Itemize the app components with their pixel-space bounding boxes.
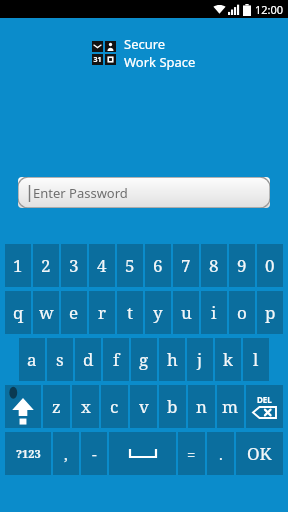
staticText: Enter Password bbox=[33, 184, 128, 202]
button[interactable]: x bbox=[72, 385, 99, 428]
staticText: k bbox=[223, 348, 233, 371]
staticText: Work Space bbox=[124, 53, 196, 71]
staticText: x bbox=[81, 395, 91, 418]
button[interactable]: = bbox=[178, 432, 205, 475]
button[interactable]: i bbox=[201, 291, 227, 334]
button[interactable]: 3 bbox=[61, 244, 87, 287]
button[interactable]: 5 bbox=[117, 244, 143, 287]
staticText: o bbox=[237, 301, 247, 324]
button[interactable]: 8 bbox=[201, 244, 227, 287]
button[interactable]: - bbox=[81, 432, 107, 475]
button[interactable]: Space bbox=[109, 432, 176, 475]
staticText: z bbox=[52, 395, 61, 418]
button[interactable]: r bbox=[89, 291, 115, 334]
button[interactable]: Shift bbox=[5, 385, 41, 428]
button[interactable]: o bbox=[229, 291, 255, 334]
staticText: f bbox=[113, 348, 120, 371]
staticText: w bbox=[39, 301, 54, 324]
staticText: t bbox=[127, 301, 133, 324]
staticText: . bbox=[219, 444, 223, 464]
staticText: d bbox=[83, 348, 94, 371]
staticText: 6 bbox=[153, 254, 163, 277]
button[interactable]: q bbox=[5, 291, 31, 334]
staticText: q bbox=[13, 301, 24, 324]
staticText: e bbox=[69, 301, 79, 324]
staticText: v bbox=[139, 395, 149, 418]
button[interactable]: . bbox=[207, 432, 234, 475]
staticText: DEL bbox=[257, 394, 272, 405]
button[interactable]: j bbox=[187, 338, 213, 381]
button[interactable]: 1 bbox=[5, 244, 31, 287]
staticText: ?123 bbox=[16, 446, 41, 461]
staticText: i bbox=[211, 301, 217, 324]
staticText: l bbox=[253, 348, 259, 371]
staticText: 2 bbox=[41, 254, 51, 277]
button[interactable]: n bbox=[188, 385, 215, 428]
button[interactable]: 6 bbox=[145, 244, 171, 287]
staticText: 12:00 bbox=[255, 2, 284, 17]
staticText: 31 bbox=[93, 55, 102, 65]
button[interactable]: v bbox=[130, 385, 157, 428]
button[interactable]: 0 bbox=[257, 244, 283, 287]
button[interactable]: h bbox=[159, 338, 185, 381]
button[interactable]: 7 bbox=[173, 244, 199, 287]
button[interactable]: k bbox=[215, 338, 241, 381]
staticText: u bbox=[181, 301, 192, 324]
button[interactable]: ?123 bbox=[5, 432, 51, 475]
staticText: n bbox=[196, 395, 207, 418]
button[interactable]: m bbox=[217, 385, 244, 428]
button[interactable]: Enter Password bbox=[18, 177, 270, 208]
button[interactable]: s bbox=[47, 338, 73, 381]
staticText: 7 bbox=[181, 254, 191, 277]
button[interactable]: u bbox=[173, 291, 199, 334]
staticText: , bbox=[64, 444, 68, 464]
staticText: 4 bbox=[97, 254, 107, 277]
staticText: b bbox=[167, 395, 178, 418]
button[interactable]: a bbox=[19, 338, 45, 381]
button[interactable]: 2 bbox=[33, 244, 59, 287]
button[interactable]: , bbox=[53, 432, 79, 475]
button[interactable]: l bbox=[243, 338, 269, 381]
staticText: 8 bbox=[209, 254, 219, 277]
staticText: j bbox=[197, 348, 203, 371]
staticText: 5 bbox=[125, 254, 135, 277]
button[interactable]: e bbox=[61, 291, 87, 334]
button[interactable]: b bbox=[159, 385, 186, 428]
button[interactable]: t bbox=[117, 291, 143, 334]
button[interactable]: OK bbox=[236, 432, 283, 475]
staticText: = bbox=[187, 444, 196, 464]
button[interactable]: 9 bbox=[229, 244, 255, 287]
staticText: m bbox=[222, 395, 239, 418]
button[interactable]: f bbox=[103, 338, 129, 381]
staticText: 1 bbox=[13, 254, 23, 277]
button[interactable]: p bbox=[257, 291, 283, 334]
staticText: Secure bbox=[124, 35, 166, 53]
staticText: y bbox=[153, 301, 163, 324]
staticText: OK bbox=[247, 442, 272, 465]
staticText: 9 bbox=[237, 254, 247, 277]
staticText: - bbox=[92, 444, 97, 464]
staticText: 0 bbox=[265, 254, 275, 277]
staticText: a bbox=[27, 348, 37, 371]
staticText: 3 bbox=[69, 254, 79, 277]
button[interactable]: w bbox=[33, 291, 59, 334]
button[interactable]: Delete bbox=[246, 385, 283, 428]
staticText: s bbox=[56, 348, 64, 371]
staticText: r bbox=[98, 301, 107, 324]
staticText: p bbox=[265, 301, 276, 324]
button[interactable]: c bbox=[101, 385, 128, 428]
button[interactable]: g bbox=[131, 338, 157, 381]
button[interactable]: d bbox=[75, 338, 101, 381]
staticText: g bbox=[139, 348, 149, 371]
staticText: c bbox=[110, 395, 119, 418]
button[interactable]: y bbox=[145, 291, 171, 334]
staticText: h bbox=[167, 348, 178, 371]
button[interactable]: 4 bbox=[89, 244, 115, 287]
button[interactable]: z bbox=[43, 385, 70, 428]
